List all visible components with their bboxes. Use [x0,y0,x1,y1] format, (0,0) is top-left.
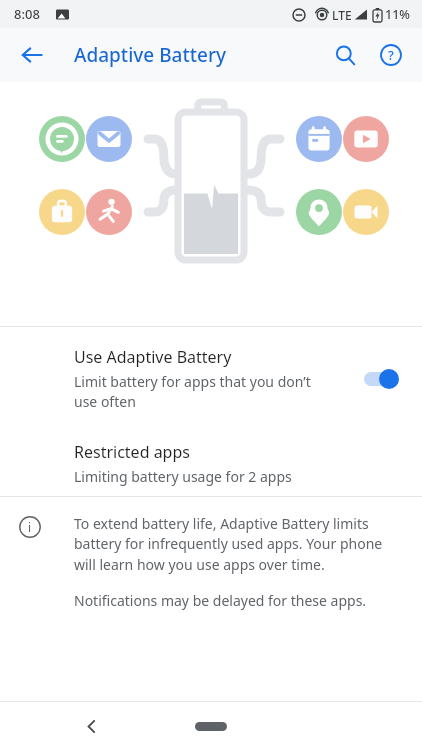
staticText: Restricted apps [74,441,190,463]
staticText: Limiting battery usage for 2 apps [74,467,292,486]
staticText: LTE [332,7,352,23]
staticText: Notifications may be delayed for these a… [74,591,367,610]
staticText: 8:08 [14,5,40,23]
staticText: To extend battery life, Adaptive Battery… [74,514,398,575]
staticText: Adaptive Battery [74,42,226,68]
button[interactable]: Back [10,33,54,77]
staticText: 11% [385,6,410,23]
button[interactable]: Home [183,713,239,739]
staticText: Use Adaptive Battery [74,346,232,368]
button[interactable]: Back [70,705,112,747]
button[interactable]: Use Adaptive Battery [0,327,422,430]
button[interactable]: Help [368,32,414,78]
staticText: Limit battery for apps that you don’t us… [74,372,332,411]
button[interactable]: Search [322,32,368,78]
button[interactable]: Restricted apps [0,430,422,496]
staticText: ? [388,46,394,64]
button[interactable]: Use Adaptive Battery toggle [362,364,406,394]
staticText: i [28,519,32,535]
